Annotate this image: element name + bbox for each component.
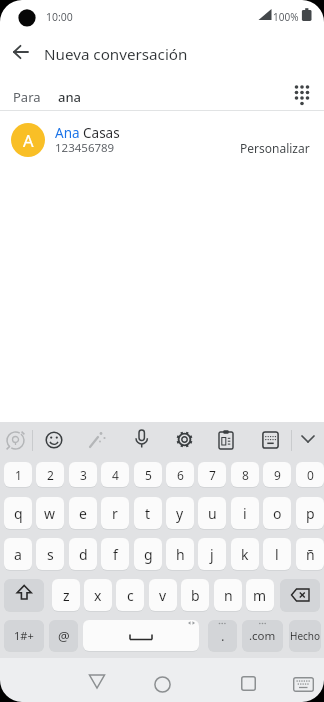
staticText: o bbox=[273, 504, 282, 523]
button[interactable]: e bbox=[69, 497, 97, 529]
staticText: 100% bbox=[273, 10, 299, 24]
button[interactable] bbox=[293, 677, 314, 692]
button[interactable] bbox=[280, 579, 320, 611]
button[interactable]: r bbox=[101, 497, 129, 529]
staticText: c bbox=[127, 586, 134, 605]
button[interactable]: 1 bbox=[4, 462, 32, 487]
button[interactable]: d bbox=[69, 538, 97, 570]
staticText: 1 bbox=[15, 467, 22, 483]
staticText: ñ bbox=[306, 545, 315, 564]
button[interactable]: k bbox=[231, 538, 259, 570]
button[interactable]: 5 bbox=[134, 462, 162, 487]
staticText: 2 bbox=[47, 467, 54, 483]
button[interactable]: f bbox=[101, 538, 129, 570]
staticText: p bbox=[306, 504, 315, 523]
button[interactable]: o bbox=[263, 497, 291, 529]
staticText: Hecho bbox=[290, 629, 321, 643]
staticText: u bbox=[208, 504, 217, 523]
button[interactable]: 1#+ bbox=[4, 620, 44, 651]
button[interactable]: s bbox=[36, 538, 64, 570]
staticText: v bbox=[159, 586, 167, 605]
button[interactable]: n bbox=[214, 579, 242, 611]
button[interactable]: c bbox=[116, 579, 144, 611]
button[interactable]: y bbox=[166, 497, 194, 529]
button[interactable]: h bbox=[166, 538, 194, 570]
button[interactable] bbox=[86, 429, 108, 451]
button[interactable]: b bbox=[181, 579, 209, 611]
staticText: n bbox=[224, 586, 233, 605]
button[interactable] bbox=[262, 431, 279, 450]
staticText: ana bbox=[58, 88, 82, 106]
button[interactable]: p bbox=[296, 497, 324, 529]
button[interactable]: Personalizar bbox=[240, 140, 310, 156]
staticText: a bbox=[14, 545, 22, 564]
staticText: 8 bbox=[242, 467, 249, 483]
staticText: k bbox=[241, 545, 249, 564]
staticText: 7 bbox=[209, 467, 216, 483]
button[interactable] bbox=[88, 673, 106, 690]
staticText: x bbox=[94, 586, 102, 605]
staticText: s bbox=[47, 545, 54, 564]
button[interactable]: ñ bbox=[296, 538, 324, 570]
staticText: 5 bbox=[145, 467, 152, 483]
button[interactable] bbox=[0, 111, 324, 171]
button[interactable]: 2 bbox=[36, 462, 64, 487]
button[interactable]: .com bbox=[242, 620, 283, 651]
button[interactable]: m bbox=[246, 579, 274, 611]
staticText: q bbox=[14, 504, 23, 523]
button[interactable]: w bbox=[36, 497, 64, 529]
staticText: m bbox=[253, 586, 267, 605]
button[interactable] bbox=[217, 429, 236, 451]
button[interactable]: q bbox=[4, 497, 32, 529]
staticText: 4 bbox=[112, 467, 119, 483]
button[interactable]: @ bbox=[49, 620, 78, 651]
staticText: i bbox=[243, 504, 247, 523]
staticText: Ana Casas bbox=[55, 124, 120, 142]
button[interactable]: i bbox=[231, 497, 259, 529]
button[interactable] bbox=[291, 82, 313, 108]
button[interactable] bbox=[83, 620, 199, 651]
button[interactable]: 7 bbox=[198, 462, 226, 487]
button[interactable] bbox=[154, 676, 171, 693]
staticText: 6 bbox=[177, 467, 184, 483]
button[interactable]: 0 bbox=[296, 462, 324, 487]
button[interactable] bbox=[4, 429, 27, 452]
staticText: r bbox=[112, 504, 118, 523]
staticText: 123456789 bbox=[55, 140, 115, 156]
staticText: .com bbox=[249, 628, 276, 644]
staticText: Nueva conversación bbox=[44, 44, 188, 65]
button[interactable]: t bbox=[134, 497, 162, 529]
button[interactable]: 3 bbox=[69, 462, 97, 487]
button[interactable] bbox=[174, 429, 195, 450]
button[interactable]: . bbox=[208, 620, 237, 651]
button[interactable]: 4 bbox=[101, 462, 129, 487]
button[interactable]: g bbox=[134, 538, 162, 570]
staticText: z bbox=[63, 586, 70, 605]
staticText: . bbox=[221, 627, 225, 645]
button[interactable]: j bbox=[198, 538, 226, 570]
button[interactable]: v bbox=[149, 579, 177, 611]
button[interactable] bbox=[300, 433, 316, 445]
button[interactable] bbox=[8, 44, 36, 72]
staticText: y bbox=[176, 504, 184, 523]
button[interactable]: x bbox=[84, 579, 112, 611]
button[interactable]: 9 bbox=[263, 462, 291, 487]
button[interactable]: l bbox=[263, 538, 291, 570]
button[interactable]: Hecho bbox=[289, 620, 321, 651]
staticText: 3 bbox=[80, 467, 87, 483]
button[interactable]: z bbox=[52, 579, 80, 611]
button[interactable]: u bbox=[198, 497, 226, 529]
staticText: d bbox=[79, 545, 88, 564]
staticText: j bbox=[210, 545, 214, 564]
button[interactable] bbox=[134, 429, 149, 451]
button[interactable] bbox=[43, 429, 65, 451]
staticText: t bbox=[145, 504, 151, 523]
button[interactable]: 6 bbox=[166, 462, 194, 487]
button[interactable]: a bbox=[4, 538, 32, 570]
staticText: A bbox=[23, 129, 34, 151]
button[interactable] bbox=[4, 579, 44, 611]
button[interactable] bbox=[241, 676, 256, 691]
button[interactable]: 8 bbox=[231, 462, 259, 487]
staticText: f bbox=[113, 545, 118, 564]
staticText: b bbox=[191, 586, 200, 605]
